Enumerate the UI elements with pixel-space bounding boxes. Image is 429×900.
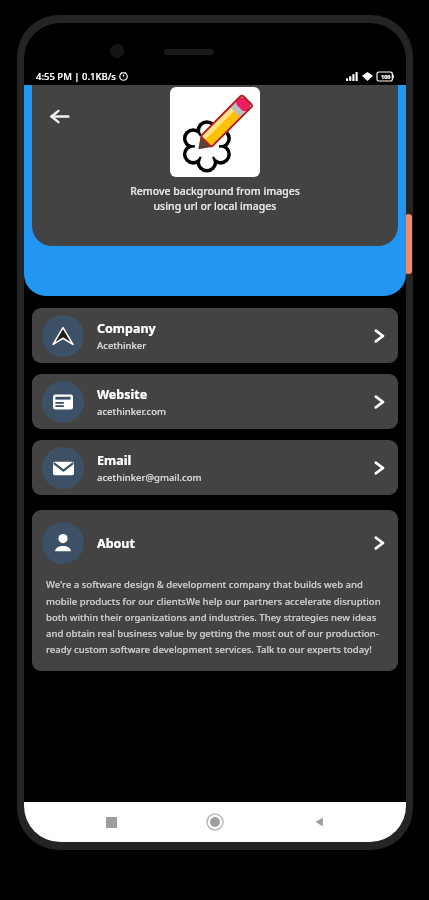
button[interactable]: Recents [94,805,128,839]
staticText: Acethinker [97,339,147,352]
staticText: 100 [381,73,391,80]
staticText: 4:55 PM | 0.1KB/s [36,70,116,83]
button[interactable]: About [32,510,398,671]
button[interactable]: Email [32,440,398,495]
staticText: About [97,535,135,552]
staticText: Email [97,452,132,469]
button[interactable]: Company [32,308,398,363]
staticText: We're a software design & development co… [46,578,386,655]
staticText: acethinker@gmail.com [97,471,202,484]
button[interactable]: Home [198,805,232,839]
button[interactable]: Website [32,374,398,429]
staticText: acethinker.com [97,405,166,418]
button[interactable]: Back [302,805,336,839]
staticText: Remove background from images using url … [130,184,300,213]
staticText: Company [97,320,156,337]
staticText: Website [97,386,148,403]
button[interactable]: Back [42,99,76,133]
